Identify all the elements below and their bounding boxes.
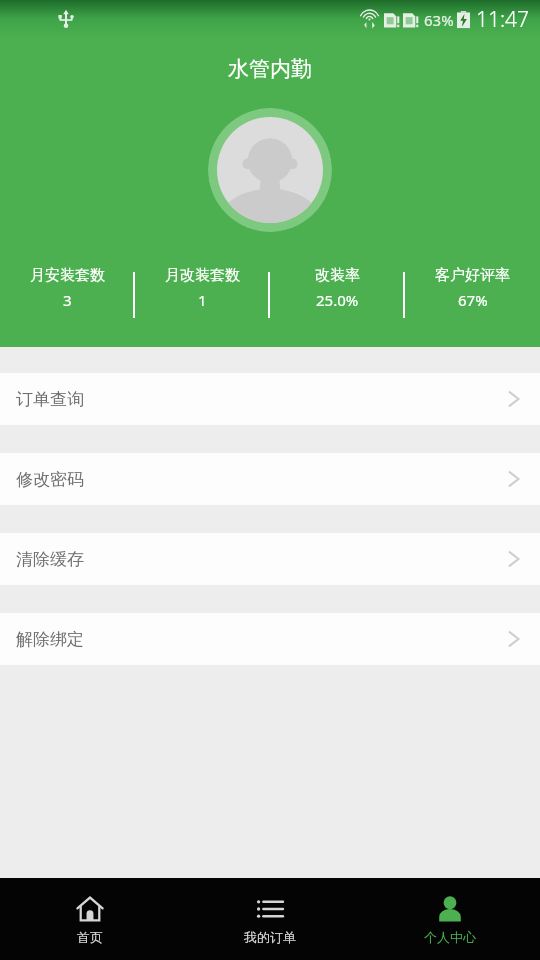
staticText: 月改装套数 xyxy=(165,266,240,285)
button[interactable]: 月安装套数 xyxy=(0,262,135,326)
staticText: 月安装套数 xyxy=(30,266,105,285)
staticText: 订单查询 xyxy=(16,389,84,410)
button[interactable]: 我的订单 xyxy=(180,878,360,960)
button[interactable]: 清除缓存 xyxy=(0,533,540,585)
staticText: 个人中心 xyxy=(424,929,476,945)
button[interactable]: 解除绑定 xyxy=(0,613,540,665)
staticText: 解除绑定 xyxy=(16,629,84,650)
button[interactable]: Profile photo xyxy=(208,108,332,232)
staticText: 3 xyxy=(63,290,72,310)
button[interactable]: 个人中心 xyxy=(360,878,540,960)
staticText: 水管内勤 xyxy=(0,56,540,82)
staticText: 25.0% xyxy=(316,290,359,310)
staticText: 客户好评率 xyxy=(435,266,510,285)
staticText: 63% xyxy=(424,10,454,30)
staticText: 1 xyxy=(198,290,207,310)
staticText: 11:47 xyxy=(476,5,530,34)
staticText: 改装率 xyxy=(315,266,360,285)
button[interactable]: 首页 xyxy=(0,878,180,960)
button[interactable]: 月改装套数 xyxy=(135,262,270,326)
staticText: 67% xyxy=(458,290,488,310)
staticText: 我的订单 xyxy=(244,929,296,945)
button[interactable]: 修改密码 xyxy=(0,453,540,505)
staticText: 首页 xyxy=(77,929,103,945)
staticText: 修改密码 xyxy=(16,469,84,490)
staticText: 清除缓存 xyxy=(16,549,84,570)
button[interactable]: 订单查询 xyxy=(0,373,540,425)
button[interactable]: 改装率 xyxy=(270,262,405,326)
button[interactable]: 客户好评率 xyxy=(405,262,540,326)
